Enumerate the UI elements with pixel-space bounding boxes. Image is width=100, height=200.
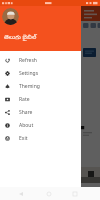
button[interactable]: Back [15, 188, 26, 199]
staticText: About [19, 122, 34, 129]
staticText: Settings [19, 70, 39, 77]
button[interactable]: Share [0, 106, 81, 119]
staticText: Theming [19, 83, 40, 90]
staticText: తెలుగు బైబిల్ [4, 33, 37, 42]
staticText: Exit [19, 135, 28, 142]
button[interactable]: Recents [69, 188, 80, 199]
button[interactable]: Settings [0, 67, 81, 80]
button[interactable]: Rate [0, 93, 81, 106]
button[interactable]: Home [43, 188, 54, 199]
staticText: Share [19, 109, 33, 116]
button[interactable]: Theming [0, 80, 81, 93]
staticText: Rate [19, 96, 30, 103]
button[interactable]: Refresh [0, 54, 81, 67]
staticText: Refresh [19, 57, 37, 64]
button[interactable]: Exit [0, 132, 81, 145]
button[interactable]: About [0, 119, 81, 132]
